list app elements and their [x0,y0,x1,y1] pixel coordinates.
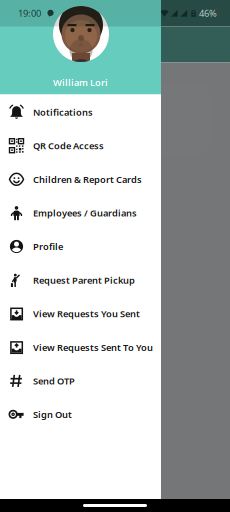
staticText: Profile [33,240,63,253]
staticText: Request Parent Pickup [33,274,135,286]
staticText: Children & Report Cards [33,173,142,185]
button[interactable]: Notifications [0,95,161,129]
staticText: 19:00 [18,7,41,19]
button[interactable]: QR Code Access [0,129,161,162]
button[interactable]: Profile [0,230,161,263]
button[interactable]: View Requests You Sent [0,297,161,330]
staticText: William Lori [53,76,108,88]
staticText: View Requests You Sent [33,307,140,320]
staticText: Send OTP [33,375,75,387]
staticText: QR Code Access [33,139,104,152]
staticText: Sign Out [33,408,72,421]
staticText: 46% [199,7,217,19]
button[interactable]: Employees / Guardians [0,196,161,230]
button[interactable]: Children & Report Cards [0,162,161,196]
staticText: Notifications [33,106,93,118]
staticText: Employees / Guardians [33,207,137,219]
button[interactable]: View Requests Sent To You [0,330,161,364]
button[interactable]: Sign Out [0,398,161,431]
button[interactable]: Send OTP [0,364,161,398]
staticText: View Requests Sent To You [33,341,153,353]
button[interactable]: Request Parent Pickup [0,263,161,297]
